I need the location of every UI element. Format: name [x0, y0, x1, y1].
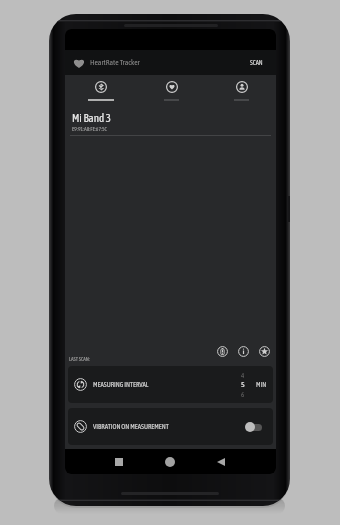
button[interactable]: Back [217, 458, 225, 466]
staticText: E9:91:A8:FE:67:5C [72, 126, 108, 132]
button[interactable]: Battery [217, 346, 228, 357]
button[interactable]: Favourite [259, 346, 270, 357]
button[interactable]: MEASURING INTERVAL [68, 366, 273, 403]
button[interactable]: Home [165, 457, 175, 467]
button[interactable]: Vibration toggle [245, 421, 262, 433]
staticText: HeartRate Tracker [90, 58, 140, 67]
staticText: VIBRATION ON MEASUREMENT [93, 423, 169, 431]
button[interactable]: Heart rate [136, 75, 206, 106]
button[interactable]: SCAN [247, 55, 266, 70]
button[interactable]: Mi Band 3 [65, 106, 276, 135]
staticText: SCAN [250, 59, 263, 66]
button[interactable]: Devices [65, 75, 136, 106]
staticText: 6 [241, 390, 245, 398]
button[interactable]: VIBRATION ON MEASUREMENT [68, 408, 273, 445]
staticText: Mi Band 3 [72, 112, 111, 125]
button[interactable]: Info [238, 346, 249, 357]
staticText: MIN [256, 381, 267, 389]
staticText: MEASURING INTERVAL [93, 381, 149, 389]
button[interactable]: Profile [206, 75, 276, 106]
staticText: 5 [241, 380, 245, 389]
staticText: 4 [241, 371, 245, 379]
staticText: LAST SCAN: [69, 356, 90, 362]
